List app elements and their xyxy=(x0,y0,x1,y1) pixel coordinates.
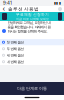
staticText: 솔루션 사용법 xyxy=(8,6,39,12)
staticText: 지금 바로 시작해 보세요 xyxy=(16,17,49,21)
staticText: 네 번째 옵션 xyxy=(6,60,23,64)
button[interactable]: 세 번째 옵션 xyxy=(0,52,64,58)
staticText: ▮▮ ▮ xyxy=(54,1,61,5)
button[interactable]: Back xyxy=(2,6,6,12)
button[interactable]: 네 번째 옵션 xyxy=(0,58,64,65)
button[interactable]: 두 번째 옵션 xyxy=(0,45,64,52)
staticText: 안녕하세요 고객님, 요청하신 내용을 확인했습니다. 아래에서 원하시는 항목… xyxy=(7,20,50,34)
button[interactable]: 첫 번째 옵션 xyxy=(0,39,64,45)
button[interactable]: Profile xyxy=(58,7,62,11)
staticText: 9:41 xyxy=(3,0,12,6)
staticText: 다음 단계로 이동 xyxy=(17,86,47,91)
button[interactable]: 다음 단계로 이동 xyxy=(0,82,64,95)
staticText: 첫 번째 옵션 xyxy=(6,40,23,44)
staticText: 무료체험 신청하기 xyxy=(16,12,49,17)
staticText: ‹ xyxy=(2,5,5,13)
staticText: 두 번째 옵션 xyxy=(6,47,23,51)
staticText: 세 번째 옵션 xyxy=(6,53,23,57)
